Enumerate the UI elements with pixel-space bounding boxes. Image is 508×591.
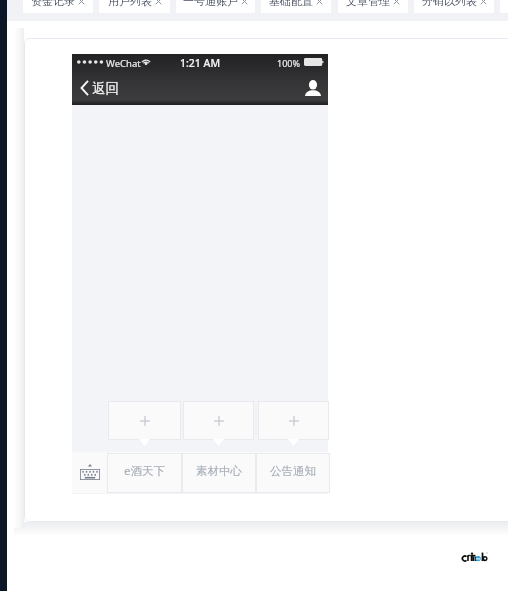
- staticText: WeChat: [106, 57, 141, 70]
- staticText: 100%: [277, 57, 300, 69]
- staticText: 素材中心: [196, 464, 242, 478]
- button[interactable]: 用户列表: [99, 0, 170, 13]
- button[interactable]: 分销以列表: [414, 0, 494, 13]
- staticText: 1:21 AM: [180, 56, 221, 70]
- button[interactable]: Add menu item: [108, 401, 181, 440]
- button[interactable]: 返回: [80, 73, 119, 103]
- button[interactable]: Add menu item: [183, 401, 254, 440]
- staticText: 分销以列表: [422, 0, 477, 8]
- button[interactable]: e酒天下: [107, 453, 182, 493]
- button[interactable]: 资金记录: [23, 0, 93, 13]
- staticText: 公告通知: [270, 464, 316, 478]
- button[interactable]: Add menu item: [258, 401, 329, 440]
- staticText: 一号通账户: [183, 0, 238, 8]
- button[interactable]: 文章管理: [338, 0, 408, 13]
- staticText: 用户列表: [108, 0, 152, 8]
- button[interactable]: User profile: [302, 74, 324, 104]
- button[interactable]: 公告通知: [256, 453, 330, 493]
- staticText: 返回: [92, 80, 119, 97]
- button[interactable]: Hide keyboard: [72, 452, 108, 493]
- staticText: 资金记录: [31, 0, 75, 8]
- staticText: e酒天下: [124, 463, 165, 479]
- button[interactable]: 基础配置: [261, 0, 331, 13]
- button[interactable]: 一号通账户: [176, 0, 255, 13]
- staticText: 文章管理: [346, 0, 390, 8]
- button[interactable]: 素材中心: [182, 453, 256, 493]
- other: crmeb logo: [462, 552, 488, 563]
- staticText: 基础配置: [269, 0, 313, 8]
